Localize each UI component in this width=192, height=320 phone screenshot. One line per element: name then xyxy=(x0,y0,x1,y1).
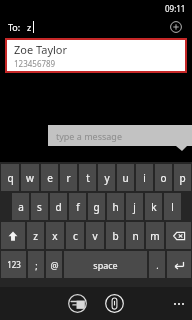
staticText: type a message xyxy=(56,130,122,142)
staticText: v xyxy=(92,229,98,243)
button[interactable]: e xyxy=(41,164,58,191)
staticText: d xyxy=(55,200,62,214)
staticText: 123456789 xyxy=(14,58,56,69)
staticText: f xyxy=(76,200,80,214)
button[interactable]: g xyxy=(88,193,105,220)
button[interactable]: key xyxy=(1,222,25,249)
button[interactable]: y xyxy=(98,164,115,191)
staticText: 123 xyxy=(7,259,21,270)
button[interactable]: p xyxy=(174,164,191,191)
staticText: @ xyxy=(50,259,59,271)
staticText: k xyxy=(151,200,157,214)
button[interactable]: c xyxy=(66,222,84,249)
button[interactable]: n xyxy=(126,222,144,249)
button[interactable]: s xyxy=(31,193,48,220)
staticText: 09:11 xyxy=(165,3,186,14)
staticText: s xyxy=(37,200,42,214)
button[interactable]: Send xyxy=(67,293,88,314)
button[interactable]: z xyxy=(27,222,44,249)
button[interactable]: key xyxy=(167,251,191,278)
button[interactable]: m xyxy=(146,222,164,249)
staticText: t xyxy=(86,171,90,185)
button[interactable]: h xyxy=(107,193,124,220)
staticText: m xyxy=(150,229,160,243)
button[interactable]: type a message xyxy=(48,125,192,146)
staticText: b xyxy=(112,229,119,243)
button[interactable]: 123 xyxy=(1,251,26,278)
staticText: p xyxy=(179,171,186,185)
button[interactable]: d xyxy=(50,193,67,220)
button[interactable]: l xyxy=(164,193,181,220)
staticText: y xyxy=(104,171,110,185)
staticText: j xyxy=(133,200,136,214)
staticText: l xyxy=(171,200,174,214)
button[interactable]: key xyxy=(166,222,191,249)
staticText: e xyxy=(47,171,53,185)
button[interactable]: j xyxy=(126,193,143,220)
button[interactable]: To: xyxy=(0,16,192,38)
staticText: z xyxy=(33,229,38,243)
staticText: space xyxy=(93,259,118,271)
button[interactable]: f xyxy=(69,193,86,220)
button[interactable]: u xyxy=(117,164,134,191)
button[interactable]: . xyxy=(149,251,165,278)
button[interactable]: r xyxy=(60,164,77,191)
staticText: x xyxy=(52,229,58,243)
button[interactable]: x xyxy=(46,222,64,249)
button[interactable]: @ xyxy=(46,251,62,278)
button[interactable]: Attach xyxy=(104,293,125,314)
staticText: h xyxy=(112,200,119,214)
staticText: w xyxy=(26,171,34,185)
button[interactable]: q xyxy=(1,164,19,191)
staticText: c xyxy=(73,229,78,243)
button[interactable]: v xyxy=(86,222,104,249)
staticText: z xyxy=(27,21,32,33)
button[interactable]: Zoe Taylor xyxy=(7,40,185,71)
staticText: Zoe Taylor xyxy=(14,42,68,57)
button[interactable]: b xyxy=(106,222,124,249)
button[interactable]: k xyxy=(145,193,162,220)
button[interactable]: a xyxy=(12,193,29,220)
button[interactable]: ; xyxy=(28,251,44,278)
staticText: ; xyxy=(35,259,38,271)
staticText: a xyxy=(18,200,24,214)
button[interactable]: space xyxy=(64,251,147,278)
button[interactable]: t xyxy=(79,164,96,191)
button[interactable]: o xyxy=(155,164,172,191)
staticText: To: xyxy=(8,21,21,33)
staticText: u xyxy=(122,171,129,185)
button[interactable]: More xyxy=(174,303,184,305)
staticText: i xyxy=(143,171,146,185)
staticText: . xyxy=(156,259,159,271)
staticText: o xyxy=(160,171,167,185)
button[interactable]: w xyxy=(21,164,39,191)
button[interactable]: i xyxy=(136,164,153,191)
staticText: q xyxy=(7,171,14,185)
staticText: r xyxy=(66,171,71,185)
staticText: n xyxy=(132,229,139,243)
button[interactable]: Add recipient xyxy=(168,19,184,35)
staticText: g xyxy=(93,200,100,214)
